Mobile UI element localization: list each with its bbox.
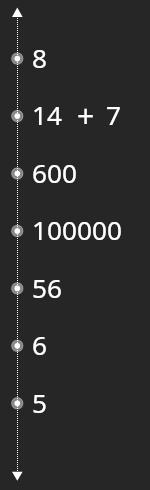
other: Timeline [0,0,150,490]
button[interactable]: 600 [32,153,146,192]
staticText: + [77,95,95,134]
button[interactable]: 5 [32,383,146,422]
staticText: 8 [32,40,47,76]
staticText: 56 [32,270,62,306]
staticText: 6 [32,327,47,363]
staticText: 7 [106,97,121,133]
staticText: 600 [32,155,77,191]
staticText: 100000 [32,212,122,248]
button[interactable]: 6 [32,325,146,364]
staticText: 14 [32,97,62,133]
staticText: 5 [32,385,47,421]
button[interactable]: 8 [32,38,146,77]
button[interactable]: 14 [32,95,146,134]
button[interactable]: 56 [32,268,146,307]
button[interactable]: 100000 [32,210,146,249]
